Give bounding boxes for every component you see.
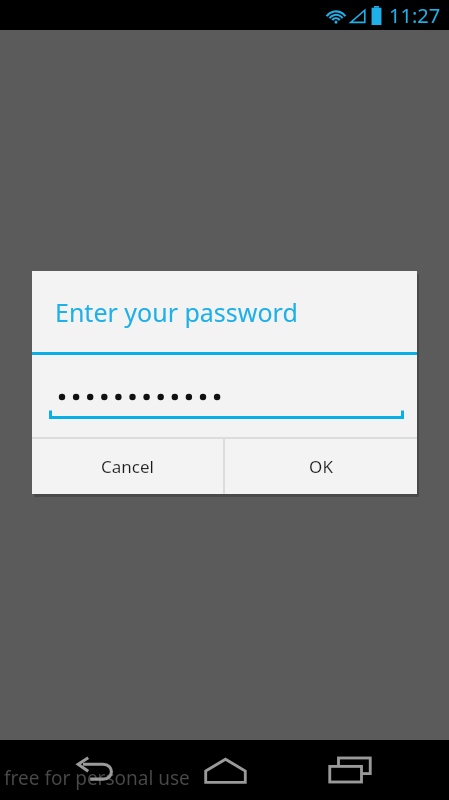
- button[interactable]: OK: [225, 439, 417, 494]
- staticText: OK: [309, 455, 333, 478]
- staticText: free for personal use: [4, 765, 190, 791]
- button[interactable]: Home: [195, 745, 255, 795]
- button[interactable]: Cancel: [32, 439, 223, 494]
- staticText: Cancel: [101, 455, 154, 478]
- button[interactable]: Recent apps: [320, 745, 380, 795]
- button[interactable]: Back: [65, 745, 125, 795]
- staticText: 11:27: [389, 2, 441, 29]
- staticText: Enter your password: [55, 295, 298, 329]
